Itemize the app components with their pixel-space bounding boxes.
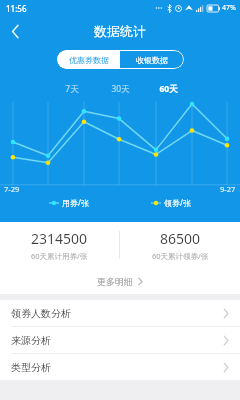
button[interactable]: 领券人数分析 xyxy=(0,300,240,326)
button[interactable]: 类型分析 xyxy=(0,354,240,380)
button[interactable]: 优惠券数据 xyxy=(57,50,120,69)
staticText: 86500 xyxy=(160,229,201,248)
staticText: 7天 xyxy=(65,83,79,95)
button[interactable]: Back xyxy=(0,16,30,46)
staticText: 领券/张 xyxy=(164,197,191,208)
button[interactable]: 30天 xyxy=(104,82,136,96)
staticText: 优惠券数据 xyxy=(69,55,109,65)
staticText: 类型分析 xyxy=(11,361,51,374)
staticText: 60天累计用券/张 xyxy=(31,251,88,261)
staticText: 2314500 xyxy=(31,229,88,248)
button[interactable]: 60天 xyxy=(152,82,184,96)
staticText: 60天累计领券/张 xyxy=(152,251,209,261)
staticText: 47% xyxy=(222,3,236,13)
staticText: 收银数据 xyxy=(136,55,168,65)
button[interactable]: 2314500 xyxy=(0,222,119,268)
staticText: 60天 xyxy=(159,83,178,95)
staticText: 9-27 xyxy=(220,184,236,194)
button[interactable]: 7天 xyxy=(56,82,88,96)
staticText: 7-29 xyxy=(4,184,20,194)
button[interactable]: 来源分析 xyxy=(0,327,240,353)
button[interactable]: 86500 xyxy=(120,222,240,268)
staticText: 数据统计 xyxy=(94,23,146,39)
staticText: 领券人数分析 xyxy=(11,307,71,320)
staticText: 11:56 xyxy=(6,3,27,14)
staticText: 来源分析 xyxy=(11,334,51,347)
button[interactable]: 收银数据 xyxy=(120,50,184,69)
button[interactable]: 更多明细 xyxy=(0,268,240,294)
staticText: 用券/张 xyxy=(62,197,89,208)
staticText: 更多明细 xyxy=(97,276,133,287)
staticText: 30天 xyxy=(111,83,130,95)
